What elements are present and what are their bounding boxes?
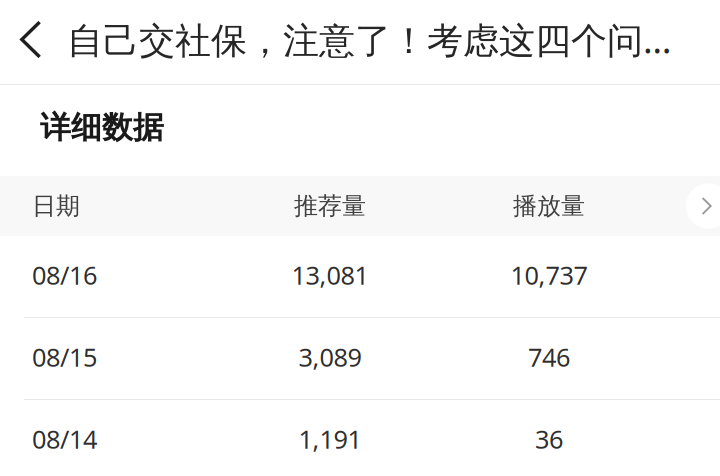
staticText: 详细数据 (40, 109, 164, 146)
staticText: 08/15 (32, 340, 97, 374)
staticText: 3,089 (298, 340, 361, 374)
staticText: 1,191 (298, 422, 361, 456)
button[interactable]: Back (0, 0, 61, 84)
staticText: 10,737 (510, 258, 587, 292)
staticText: 08/16 (32, 258, 97, 292)
staticText: 08/14 (32, 422, 97, 456)
staticText: 自己交社保，注意了！考虑这四个问… (67, 16, 671, 63)
staticText: 13,081 (291, 258, 368, 292)
staticText: 36 (535, 422, 563, 456)
staticText: 播放量 (513, 191, 585, 221)
button[interactable]: Next columns (686, 183, 720, 228)
staticText: 推荐量 (294, 191, 366, 221)
staticText: 日期 (32, 191, 80, 221)
staticText: 746 (528, 340, 570, 374)
